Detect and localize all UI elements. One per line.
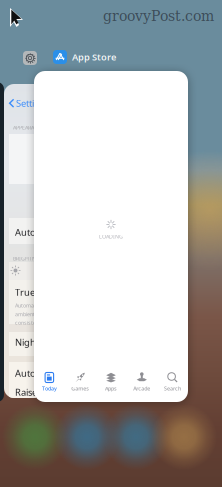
staticText: groovyPost.com [103, 8, 214, 24]
button[interactable]: Apps [96, 372, 126, 392]
staticText: Apps [105, 385, 117, 392]
staticText: ambient lighting [15, 311, 53, 318]
staticText: Automatic [15, 226, 59, 238]
staticText: Raise to Wake [15, 386, 73, 398]
staticText: App Store [72, 51, 116, 63]
staticText: Arcade [133, 385, 150, 392]
staticText: Auto-Lock [15, 367, 59, 379]
button[interactable]: Today [34, 372, 65, 392]
button[interactable]: Search [157, 372, 188, 392]
staticText: Settings [16, 97, 50, 109]
staticText: BRIGHTNESS [13, 255, 45, 262]
staticText: Today [42, 385, 57, 392]
staticText: LOADING [99, 233, 123, 240]
staticText: Automatically adapt [15, 302, 63, 309]
staticText: APPEARANCE [13, 124, 44, 131]
staticText: True Tone [15, 286, 59, 298]
button[interactable]: Games [65, 372, 96, 392]
staticText: Search [164, 385, 181, 392]
staticText: consistent [15, 319, 41, 326]
staticText: Games [71, 385, 89, 392]
staticText: Night Shift [15, 336, 60, 348]
button[interactable]: Arcade [126, 372, 157, 392]
